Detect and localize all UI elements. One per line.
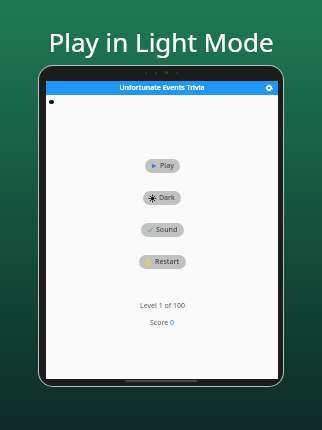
staticText: Unfortunate Events Trivia [119,83,205,93]
button[interactable]: Restart [139,255,186,269]
staticText: Restart [155,257,180,267]
staticText: Sound [156,225,178,235]
button[interactable]: Play [145,159,180,173]
button[interactable]: Settings [264,83,274,93]
button[interactable]: Sound [141,223,184,237]
staticText: Level 1 of 100 [140,301,185,311]
staticText: Dark [159,193,175,203]
staticText: Play in Light Mode [0,24,322,59]
staticText: Score 0 [150,318,174,328]
button[interactable]: Dark [143,191,181,205]
staticText: Play [160,161,174,171]
